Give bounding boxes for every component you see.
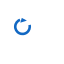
button[interactable]: Refresh [0, 0, 64, 64]
